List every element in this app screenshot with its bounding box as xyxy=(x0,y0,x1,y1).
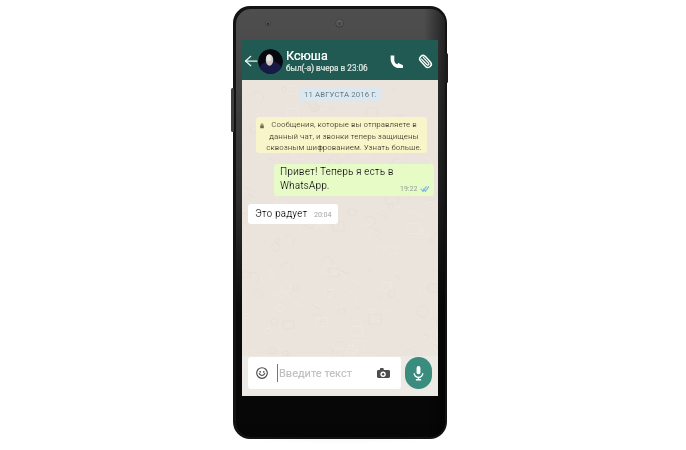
staticText: Привет! Теперь я есть в WhatsApp. xyxy=(280,166,434,191)
button[interactable]: Contact photo xyxy=(258,49,283,74)
button[interactable]: Введите текст xyxy=(248,357,401,389)
staticText: Сообщения, которые вы отправляете в данн… xyxy=(265,120,423,151)
staticText: Это радует xyxy=(255,208,308,220)
button[interactable]: Back xyxy=(244,47,257,73)
button[interactable]: 11 АВГУСТА 2016 Г. xyxy=(299,87,382,101)
staticText: был(-а) вчера в 23:06 xyxy=(286,63,368,73)
staticText: Ксюша xyxy=(286,48,328,63)
button[interactable]: Record voice message xyxy=(405,357,432,389)
button[interactable]: Это радует xyxy=(248,204,338,224)
staticText: Введите текст xyxy=(279,367,352,380)
button[interactable]: Call xyxy=(390,47,406,73)
staticText: 11 АВГУСТА 2016 Г. xyxy=(304,90,377,99)
staticText: 20:04 xyxy=(314,211,332,219)
staticText: 19:22 xyxy=(400,185,418,193)
button[interactable]: Attach xyxy=(416,47,433,73)
button[interactable]: Привет! Теперь я есть в WhatsApp. xyxy=(274,164,434,196)
button[interactable]: Camera xyxy=(373,363,393,383)
button[interactable]: Сообщения, которые вы отправляете в данн… xyxy=(256,117,427,153)
